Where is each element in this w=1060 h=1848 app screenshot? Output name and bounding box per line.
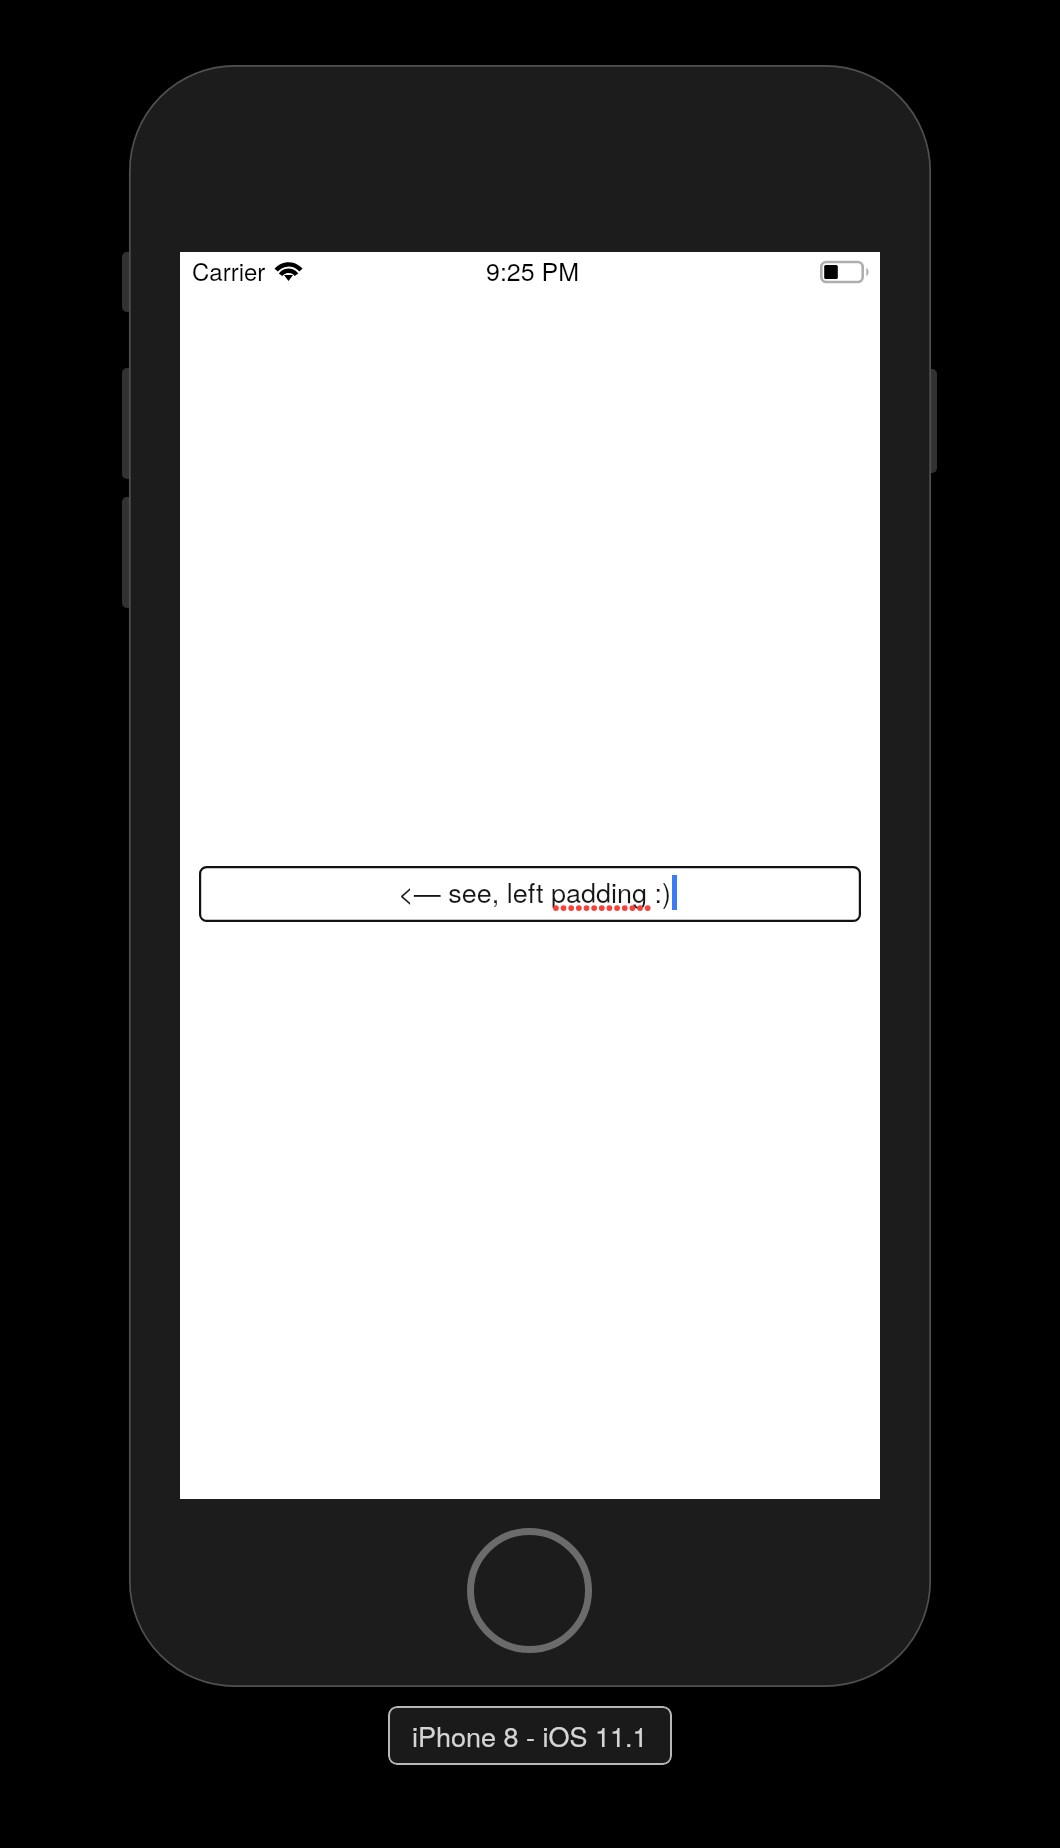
staticText: <— see, left padding :) [398,872,672,911]
other: Battery [820,259,872,285]
staticText: 9:25 PM [486,252,580,288]
button[interactable]: iPhone 8 - iOS 11.1 [388,1706,672,1765]
button[interactable]: Home [467,1528,592,1653]
button[interactable]: <— see, left padding :) [199,866,861,922]
staticText: Carrier [192,253,266,287]
staticText: iPhone 8 - iOS 11.1 [412,1716,648,1755]
other: Wi-Fi [274,259,303,281]
